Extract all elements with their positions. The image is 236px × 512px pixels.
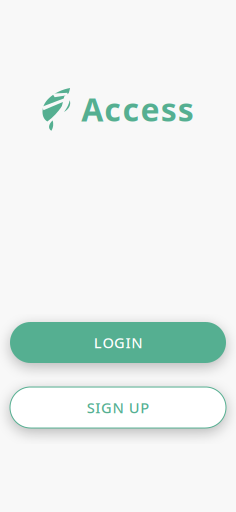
staticText: LOGIN (94, 333, 142, 352)
button[interactable]: SIGN UP (10, 387, 226, 428)
staticText: Access (81, 88, 194, 130)
button[interactable]: LOGIN (10, 322, 226, 363)
staticText: SIGN UP (87, 398, 149, 417)
